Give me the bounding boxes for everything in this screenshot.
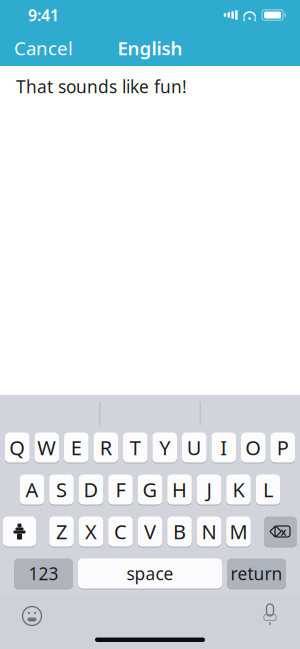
staticText: T bbox=[130, 434, 141, 461]
button[interactable]: S bbox=[49, 474, 74, 505]
button[interactable]: B bbox=[167, 516, 192, 547]
staticText: M bbox=[229, 518, 247, 545]
staticText: B bbox=[173, 518, 186, 545]
button[interactable]: I bbox=[211, 432, 236, 463]
staticText: R bbox=[100, 434, 112, 461]
button[interactable]: K bbox=[226, 474, 251, 505]
button[interactable]: Z bbox=[49, 516, 74, 547]
button[interactable]: space bbox=[78, 558, 222, 589]
button[interactable]: H bbox=[167, 474, 192, 505]
staticText: 9:41 bbox=[28, 4, 59, 26]
staticText: V bbox=[144, 518, 156, 545]
staticText: 123 bbox=[28, 562, 58, 585]
button[interactable]: D bbox=[79, 474, 103, 505]
button[interactable]: P bbox=[270, 432, 295, 463]
button[interactable]: Shift bbox=[3, 516, 36, 547]
button[interactable]: Dictation bbox=[253, 597, 287, 635]
staticText: C bbox=[114, 518, 127, 545]
staticText: space bbox=[126, 562, 173, 585]
button[interactable]: F bbox=[108, 474, 133, 505]
staticText: Q bbox=[9, 434, 25, 461]
staticText: P bbox=[277, 434, 289, 461]
staticText: x bbox=[280, 524, 286, 539]
button[interactable]: Cancel bbox=[2, 28, 85, 68]
staticText: L bbox=[263, 476, 273, 503]
button[interactable]: return bbox=[227, 558, 286, 589]
button[interactable]: O bbox=[241, 432, 265, 463]
staticText: F bbox=[115, 476, 125, 503]
button[interactable]: U bbox=[182, 432, 206, 463]
button[interactable]: V bbox=[138, 516, 162, 547]
staticText: E bbox=[71, 434, 82, 461]
staticText: N bbox=[201, 518, 216, 545]
staticText: U bbox=[187, 434, 202, 461]
button[interactable]: C bbox=[108, 516, 133, 547]
button[interactable]: L bbox=[256, 474, 280, 505]
staticText: D bbox=[83, 476, 98, 503]
button[interactable]: Y bbox=[152, 432, 177, 463]
button[interactable]: R bbox=[93, 432, 118, 463]
staticText: K bbox=[232, 476, 244, 503]
button[interactable]: N bbox=[197, 516, 221, 547]
staticText: I bbox=[220, 434, 227, 461]
button[interactable]: J bbox=[197, 474, 221, 505]
staticText: G bbox=[142, 476, 157, 503]
staticText: X bbox=[85, 518, 97, 545]
button[interactable]: W bbox=[34, 432, 59, 463]
staticText: Z bbox=[56, 518, 67, 545]
button[interactable]: G bbox=[138, 474, 162, 505]
button[interactable]: M bbox=[226, 516, 251, 547]
button[interactable]: E bbox=[64, 432, 88, 463]
button[interactable]: 123 bbox=[14, 558, 73, 589]
staticText: J bbox=[206, 476, 211, 503]
button[interactable]: Emoji keyboard bbox=[13, 597, 51, 635]
button[interactable]: X bbox=[79, 516, 103, 547]
button[interactable]: Delete bbox=[264, 516, 297, 547]
staticText: Y bbox=[159, 434, 170, 461]
button[interactable]: A bbox=[20, 474, 44, 505]
staticText: W bbox=[37, 434, 56, 461]
button[interactable]: T bbox=[123, 432, 147, 463]
staticText: S bbox=[56, 476, 67, 503]
staticText: That sounds like fun! bbox=[16, 75, 187, 98]
button[interactable]: Q bbox=[5, 432, 29, 463]
staticText: English bbox=[117, 36, 182, 60]
staticText: Cancel bbox=[14, 36, 73, 60]
staticText: return bbox=[230, 562, 282, 585]
staticText: H bbox=[172, 476, 187, 503]
staticText: O bbox=[245, 434, 261, 461]
staticText: A bbox=[25, 476, 38, 503]
